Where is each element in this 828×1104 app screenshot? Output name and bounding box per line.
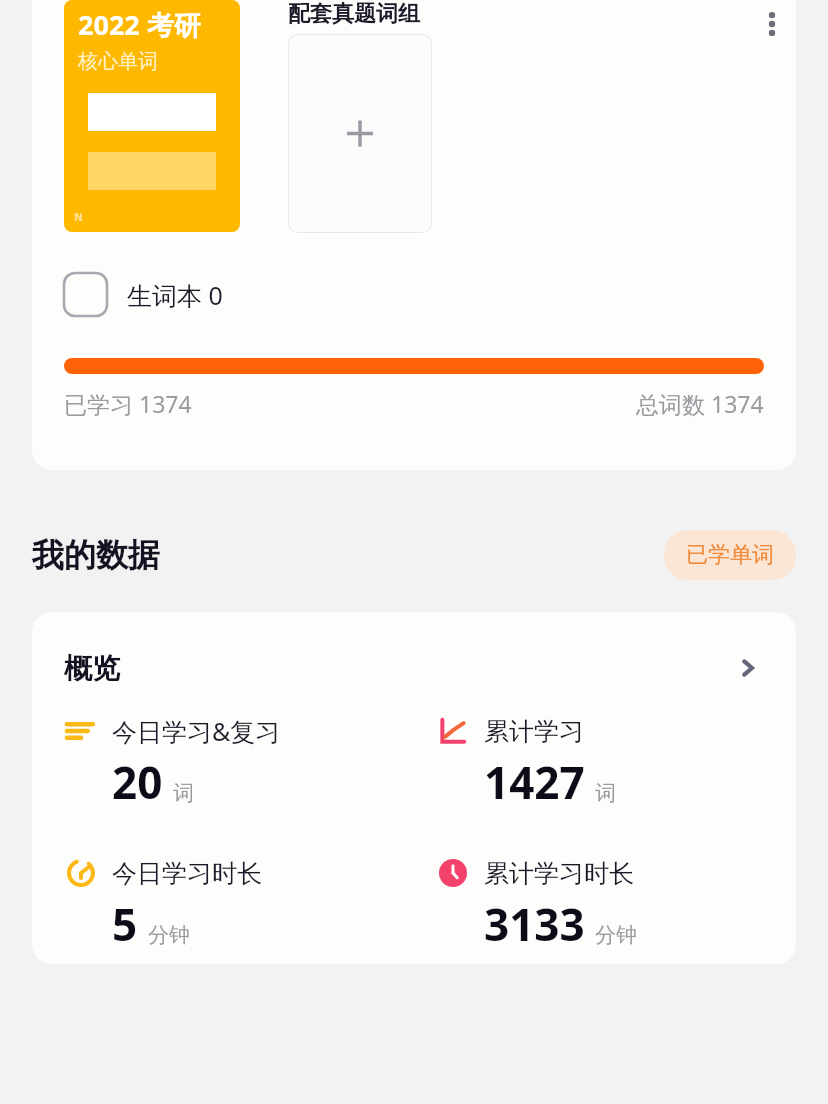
- staticText: N: [74, 209, 83, 224]
- staticText: 总词数 1374: [636, 388, 764, 419]
- staticText: 已学单词: [686, 541, 774, 569]
- button[interactable]: Open overview: [730, 650, 766, 686]
- staticText: 核心单词: [78, 49, 158, 74]
- staticText: 今日学习时长: [112, 858, 262, 889]
- staticText: 累计学习: [484, 716, 584, 747]
- staticText: 1427: [484, 752, 585, 812]
- staticText: 已学习 1374: [64, 388, 192, 419]
- button[interactable]: 已学单词: [664, 530, 796, 580]
- staticText: 我的数据: [32, 535, 160, 575]
- staticText: 词: [173, 780, 194, 806]
- staticText: 3133: [484, 894, 585, 954]
- staticText: 累计学习时长: [484, 858, 634, 889]
- button[interactable]: More options: [748, 0, 796, 48]
- staticText: 分钟: [595, 922, 637, 948]
- button[interactable]: 生词本 0: [64, 273, 223, 316]
- staticText: 2022 考研: [78, 6, 201, 43]
- staticText: 20: [112, 752, 163, 812]
- staticText: 词: [595, 780, 616, 806]
- button[interactable]: Add word group: [288, 34, 432, 233]
- button[interactable]: 概览: [32, 612, 796, 964]
- staticText: 概览: [64, 651, 120, 686]
- staticText: 配套真题词组: [288, 0, 420, 28]
- staticText: 生词本 0: [127, 278, 223, 312]
- staticText: 分钟: [148, 922, 190, 948]
- button[interactable]: 2022 考研: [64, 0, 240, 232]
- staticText: 5: [112, 894, 138, 954]
- staticText: 今日学习&复习: [112, 714, 281, 748]
